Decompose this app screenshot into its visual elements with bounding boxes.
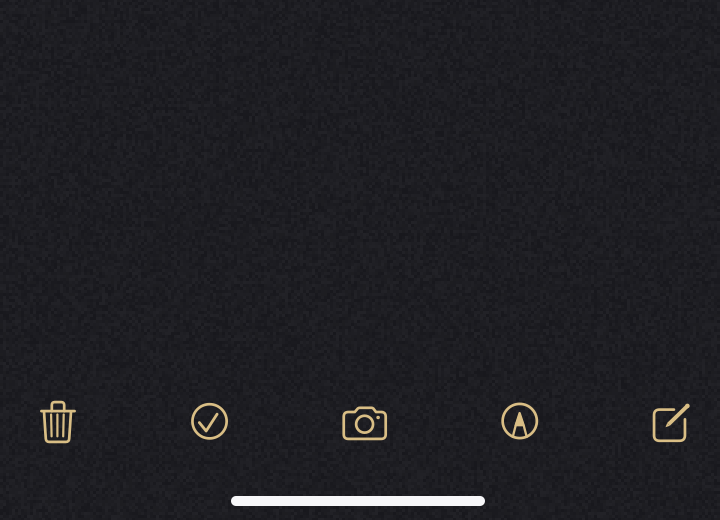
button[interactable]: Markup (493, 395, 546, 447)
button[interactable]: Delete (27, 395, 88, 447)
button[interactable]: New Note (641, 395, 699, 447)
button[interactable]: Done (183, 395, 235, 447)
button[interactable]: Camera (330, 395, 398, 447)
